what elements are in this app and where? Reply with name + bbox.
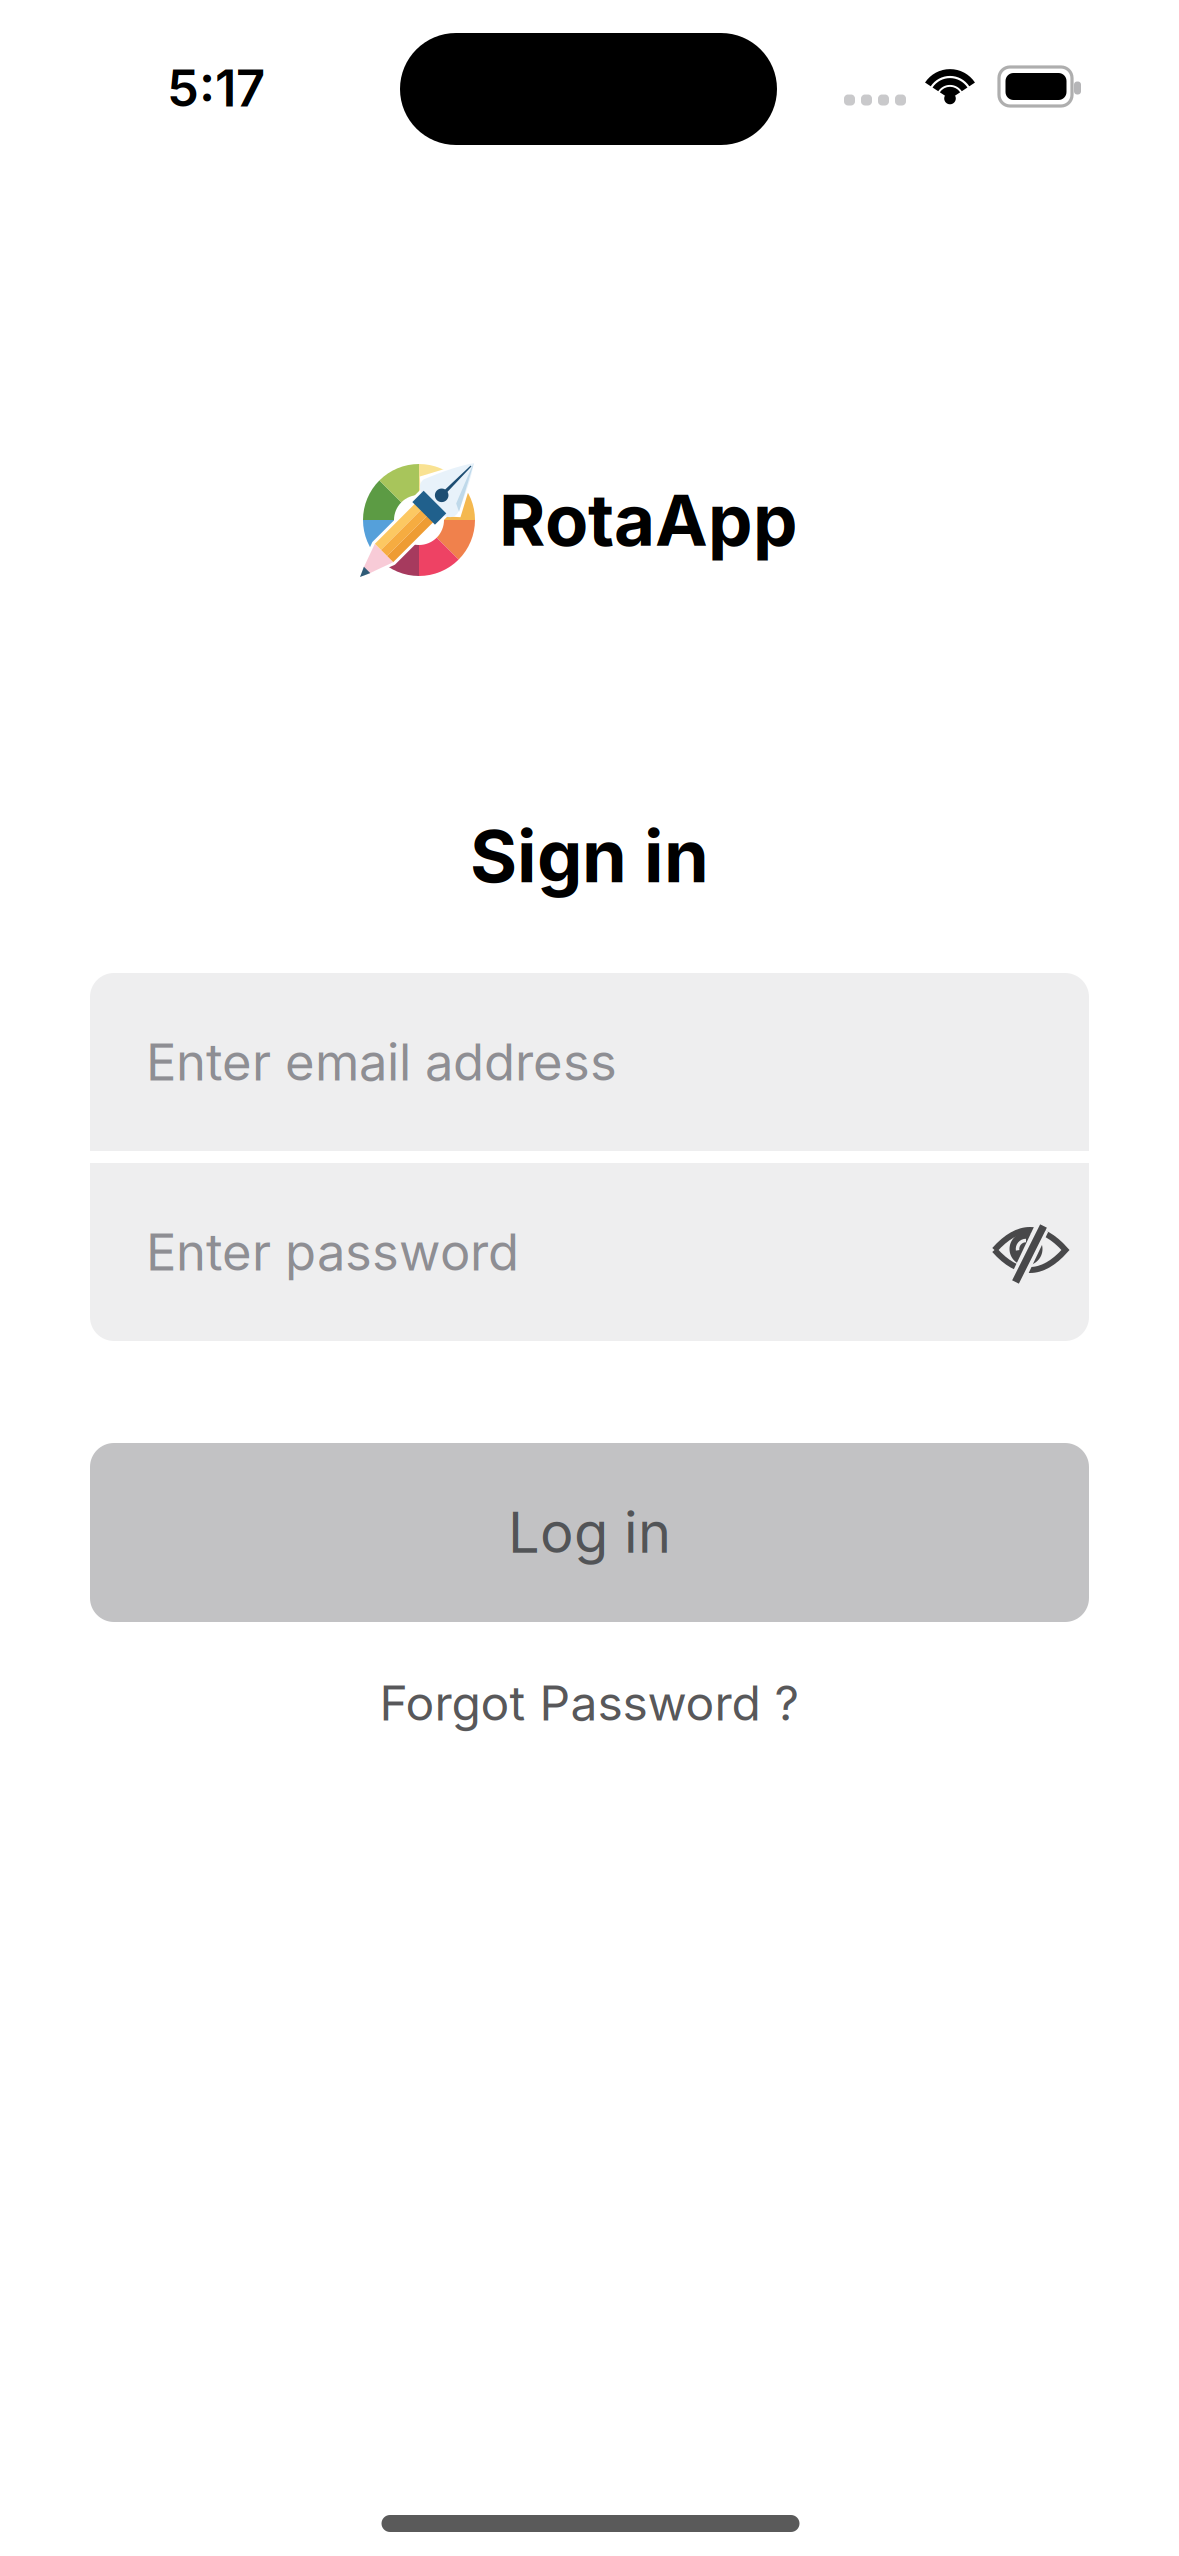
staticText: Enter password xyxy=(146,1222,519,1282)
button[interactable]: Log in xyxy=(90,1443,1089,1622)
staticText: Enter email address xyxy=(146,1032,617,1092)
staticText: Log in xyxy=(508,1499,671,1566)
staticText: Forgot Password ? xyxy=(379,1675,799,1731)
button[interactable]: Forgot Password ? xyxy=(379,1675,799,1731)
staticText: RotaApp xyxy=(499,478,798,562)
staticText: Sign in xyxy=(470,813,709,898)
staticText: 5:17 xyxy=(167,58,265,118)
button[interactable]: Show password xyxy=(969,1192,1089,1312)
